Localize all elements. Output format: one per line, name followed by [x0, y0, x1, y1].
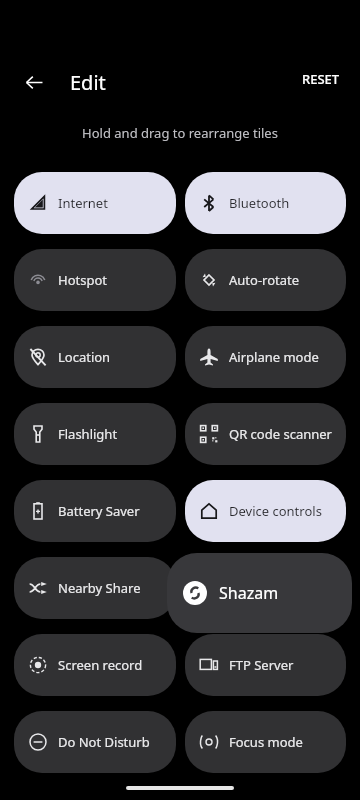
button[interactable]: Battery Saver [14, 480, 176, 542]
button[interactable]: FTP Server [185, 634, 346, 696]
button[interactable]: Location [14, 326, 176, 388]
button[interactable]: Bluetooth [185, 172, 346, 234]
staticText: Device controls [229, 502, 322, 520]
staticText: Do Not Disturb [58, 733, 150, 751]
staticText: Airplane mode [229, 348, 319, 366]
staticText: Flashlight [58, 425, 118, 443]
button[interactable]: Nearby Share [14, 557, 176, 619]
staticText: Edit [70, 69, 106, 96]
staticText: Location [58, 348, 111, 366]
staticText: Hold and drag to rearrange tiles [0, 124, 360, 142]
button[interactable]: QR code scanner [185, 403, 346, 465]
button[interactable]: Do Not Disturb [14, 711, 176, 773]
staticText: RESET [302, 70, 340, 88]
staticText: Shazam [219, 582, 279, 604]
button[interactable]: Auto-rotate [185, 249, 346, 311]
button[interactable]: Shazam [167, 553, 352, 633]
button[interactable]: Screen record [14, 634, 176, 696]
staticText: Nearby Share [58, 579, 141, 597]
staticText: Battery Saver [58, 502, 140, 520]
staticText: Screen record [58, 656, 143, 674]
staticText: Bluetooth [229, 194, 290, 212]
button[interactable]: Flashlight [14, 403, 176, 465]
button[interactable]: Focus mode [185, 711, 346, 773]
staticText: Auto-rotate [229, 271, 300, 289]
staticText: FTP Server [229, 656, 294, 674]
button[interactable]: Internet [14, 172, 176, 234]
staticText: Internet [58, 194, 108, 212]
button[interactable]: Back [14, 62, 54, 102]
staticText: Focus mode [229, 733, 303, 751]
button[interactable]: Airplane mode [185, 326, 346, 388]
button[interactable]: Device controls [185, 480, 346, 542]
staticText: QR code scanner [229, 425, 332, 443]
staticText: Hotspot [58, 271, 107, 289]
button[interactable]: Hotspot [14, 249, 176, 311]
button[interactable]: RESET [296, 64, 346, 94]
